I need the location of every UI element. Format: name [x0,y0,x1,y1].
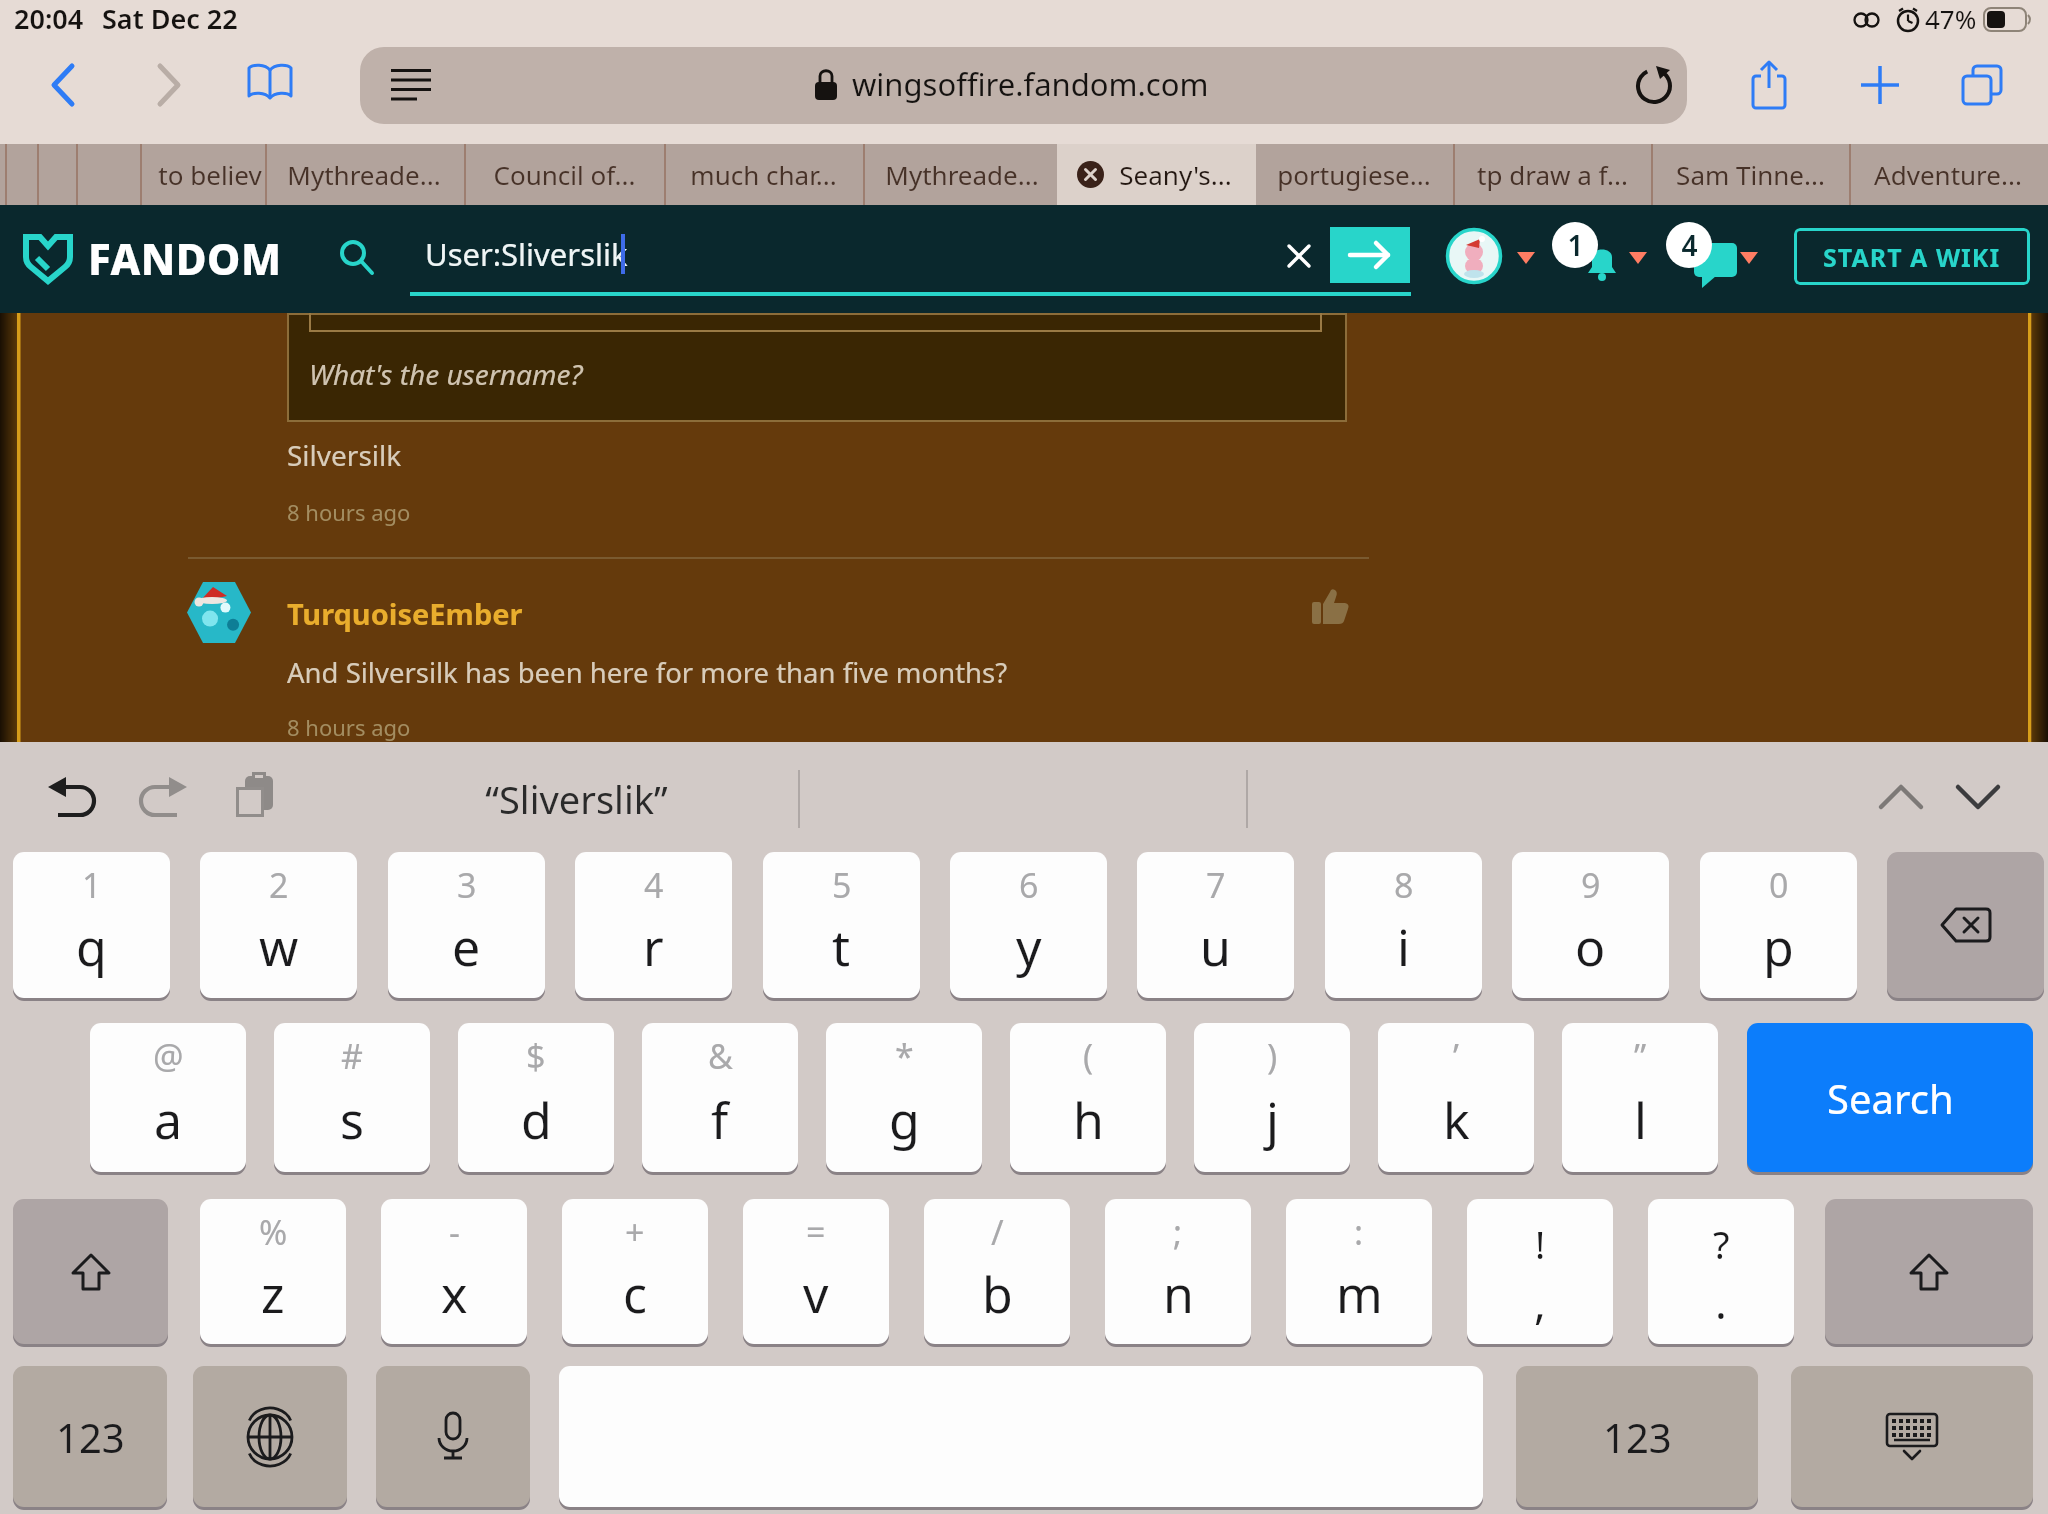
staticText: ( [1083,1033,1094,1079]
button[interactable] [193,1366,347,1507]
button[interactable]: 7 [1137,852,1294,998]
staticText: Adventure... [1874,157,2022,192]
button[interactable]: 5 [763,852,920,998]
button[interactable] [1287,244,1311,268]
button[interactable]: / [924,1199,1070,1344]
staticText: 8 hours ago [287,497,411,527]
button[interactable] [376,1366,530,1507]
button[interactable]: 123 [13,1366,167,1507]
staticText: Mythreade... [287,157,441,192]
button[interactable] [1740,252,1758,264]
button[interactable]: 6 [950,852,1107,998]
button[interactable]: 8 [1325,852,1482,998]
button[interactable] [1861,66,1899,104]
button[interactable] [1517,252,1535,264]
button[interactable] [1751,60,1787,110]
button[interactable]: = [743,1199,889,1344]
staticText: r [643,913,664,981]
button[interactable]: 123 [1516,1366,1758,1507]
button[interactable]: 0 [1700,852,1857,998]
button[interactable]: ( [1010,1023,1166,1172]
button[interactable] [139,774,189,820]
button[interactable] [340,240,376,276]
staticText: j [1266,1086,1279,1154]
button[interactable] [1312,588,1352,628]
button[interactable]: START A WIKI [1794,228,2030,285]
staticText: 4 [644,862,664,908]
button[interactable] [1330,227,1410,283]
button[interactable] [1955,784,2001,810]
button[interactable] [1887,852,2044,998]
button[interactable] [1584,241,1626,283]
button[interactable]: # [274,1023,430,1172]
staticText: 8 hours ago [287,712,411,742]
button[interactable]: ’ [1378,1023,1534,1172]
button[interactable] [1634,66,1674,106]
button[interactable] [1791,1366,2033,1507]
button[interactable] [1446,228,1502,284]
button[interactable] [1878,784,1924,810]
staticText: ” [1634,1033,1647,1079]
button[interactable] [1552,222,1598,268]
button[interactable] [360,47,1687,124]
button[interactable]: - [381,1199,527,1344]
staticText: o [1575,913,1606,981]
button[interactable]: ” [1562,1023,1718,1172]
staticText: 4 [1681,226,1698,264]
button[interactable]: % [200,1199,346,1344]
button[interactable]: 1 [13,852,170,998]
button[interactable]: ? [1648,1199,1794,1344]
staticText: FANDOM [88,230,282,287]
staticText: to believ [158,157,262,192]
button[interactable] [1629,252,1647,264]
staticText: 123 [56,1410,125,1464]
staticText: Sat Dec 22 [102,0,238,37]
button[interactable] [156,64,182,106]
button[interactable] [1961,64,2003,106]
button[interactable]: & [642,1023,798,1172]
button[interactable] [235,772,277,820]
staticText: 3 [457,862,477,908]
staticText: ) [1267,1033,1278,1079]
staticText: portugiese... [1277,157,1431,192]
staticText: b [982,1260,1013,1328]
button[interactable]: ) [1194,1023,1350,1172]
button[interactable] [1077,161,1104,188]
button[interactable] [13,1199,168,1344]
staticText: $ [526,1033,546,1079]
button[interactable] [50,64,76,106]
button[interactable] [46,774,96,820]
button[interactable]: + [562,1199,708,1344]
staticText: tp draw a f... [1477,157,1628,192]
button[interactable]: $ [458,1023,614,1172]
button[interactable] [1825,1199,2033,1344]
button[interactable] [1057,144,1256,205]
staticText: 2 [269,862,289,908]
button[interactable] [22,231,74,285]
button[interactable] [1666,222,1712,268]
button[interactable]: * [826,1023,982,1172]
staticText: Silversilk [287,436,402,474]
staticText: e [452,913,481,981]
staticText: ’ [1453,1033,1459,1079]
button[interactable]: : [1286,1199,1432,1344]
staticText: ! [1535,1218,1546,1270]
staticText: 5 [832,862,852,908]
button[interactable] [1694,243,1740,289]
button[interactable]: Search [1747,1023,2033,1172]
button[interactable] [187,582,251,643]
button[interactable]: 2 [200,852,357,998]
staticText: What's the username? [309,355,583,393]
staticText: Council of... [493,157,636,192]
button[interactable]: ; [1105,1199,1251,1344]
button[interactable]: 3 [388,852,545,998]
button[interactable]: 9 [1512,852,1669,998]
button[interactable]: 4 [575,852,732,998]
staticText: / [991,1209,1004,1255]
button[interactable] [247,64,293,106]
staticText: w [259,913,299,981]
button[interactable]: @ [90,1023,246,1172]
button[interactable]: ! [1467,1199,1613,1344]
